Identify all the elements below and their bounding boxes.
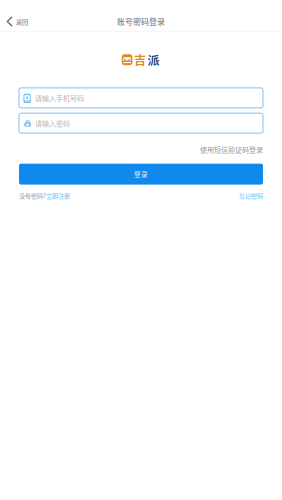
button[interactable]: 忘记密码 — [239, 190, 263, 201]
button[interactable]: 没有密码? — [19, 190, 70, 201]
staticText: 没有密码? — [19, 191, 46, 200]
staticText: 请输入手机号码 — [35, 93, 84, 103]
button[interactable]: 登录 — [19, 164, 263, 185]
button[interactable]: 使用短信验证码登录 — [200, 143, 263, 156]
staticText: 派 — [148, 51, 160, 68]
staticText: 立即注册 — [46, 191, 70, 200]
staticText: 返回 — [16, 17, 28, 26]
staticText: 账号密码登录 — [117, 15, 165, 27]
staticText: 请输入密码 — [35, 118, 70, 128]
button[interactable]: 返回 — [0, 7, 36, 25]
staticText: 使用短信验证码登录 — [200, 144, 263, 154]
staticText: 忘记密码 — [239, 191, 263, 200]
staticText: 登录 — [134, 169, 148, 179]
staticText: 吉 — [134, 51, 146, 68]
